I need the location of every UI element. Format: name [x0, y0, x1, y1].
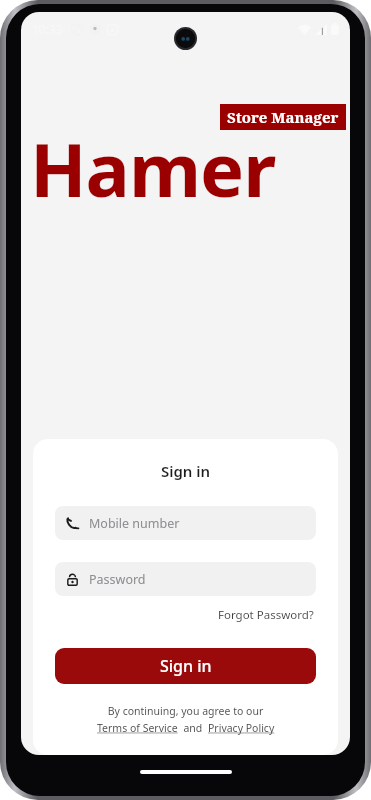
button[interactable]: Forgot Password?: [216, 604, 316, 626]
staticText: Mobile number: [89, 515, 180, 532]
staticText: Store Manager: [227, 107, 339, 127]
staticText: Sign in: [160, 655, 212, 677]
staticText: Sign in: [55, 461, 316, 481]
staticText: Privacy Policy: [208, 721, 275, 735]
staticText: By continuing, you agree to our: [55, 704, 316, 718]
staticText: Hamer: [30, 118, 276, 219]
button[interactable]: Terms of Service: [97, 721, 178, 735]
button[interactable]: Sign in: [55, 648, 316, 684]
button[interactable]: Password: [55, 562, 316, 596]
staticText: and: [178, 721, 208, 735]
button[interactable]: Privacy Policy: [208, 721, 275, 735]
staticText: Terms of Service: [97, 721, 178, 735]
staticText: Forgot Password?: [218, 607, 314, 623]
staticText: Password: [89, 571, 146, 588]
button[interactable]: Mobile number: [55, 506, 316, 540]
